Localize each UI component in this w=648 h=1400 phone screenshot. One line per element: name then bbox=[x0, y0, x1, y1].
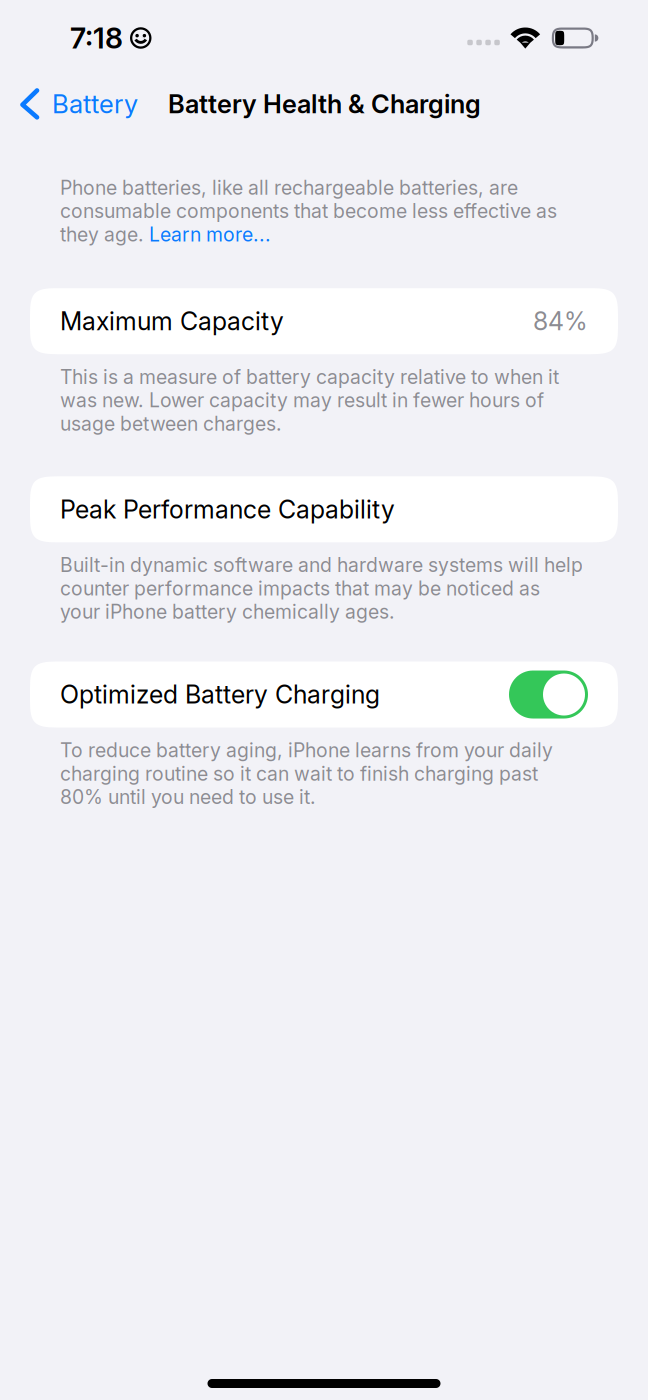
staticText: 84% bbox=[533, 306, 588, 336]
staticText: Battery bbox=[52, 88, 138, 119]
button[interactable]: Maximum Capacity bbox=[0, 288, 648, 354]
staticText: Battery Health & Charging bbox=[168, 89, 481, 119]
staticText: Maximum Capacity bbox=[60, 306, 284, 336]
staticText: Phone batteries, like all rechargeable b… bbox=[60, 176, 557, 246]
staticText: 7:18 bbox=[70, 21, 123, 55]
staticText: Built-in dynamic software and hardware s… bbox=[60, 553, 583, 623]
staticText: Optimized Battery Charging bbox=[60, 679, 380, 710]
button[interactable]: Peak Performance Capability bbox=[0, 476, 648, 542]
staticText: To reduce battery aging, iPhone learns f… bbox=[60, 738, 553, 809]
staticText: Peak Performance Capability bbox=[60, 494, 395, 524]
button[interactable]: Battery bbox=[0, 78, 138, 130]
button[interactable]: Optimized Battery Charging bbox=[509, 670, 588, 718]
staticText: This is a measure of battery capacity re… bbox=[60, 365, 559, 435]
